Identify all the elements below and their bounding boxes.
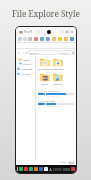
staticText: Documents [38, 68, 51, 71]
staticText: Pictures [51, 83, 64, 86]
button[interactable] [27, 36, 33, 48]
button[interactable]: App [39, 167, 43, 171]
staticText: Local Disk (C:) [21, 67, 35, 70]
button[interactable]: Videos [38, 73, 51, 86]
button[interactable] [33, 36, 39, 48]
button[interactable]: Documents [38, 58, 51, 71]
staticText: Local Disk (C:) [46, 89, 62, 92]
button[interactable] [63, 36, 69, 48]
button[interactable]: Back [17, 51, 21, 55]
button[interactable]: This PC [30, 50, 57, 55]
staticText: File Explore Style [12, 8, 80, 19]
button[interactable]: Notifications [71, 167, 75, 171]
button[interactable]: Local Disk (C:) [17, 66, 35, 70]
button[interactable]: Close [69, 29, 74, 35]
button[interactable]: App [29, 167, 33, 171]
staticText: This PC [23, 62, 32, 65]
staticText: Quick access [23, 58, 35, 61]
button[interactable] [57, 36, 63, 48]
staticText: This PC [30, 51, 39, 54]
staticText: Videos [38, 83, 51, 86]
button[interactable]: Local Disk (C:) [38, 89, 74, 97]
staticText: SD Card [46, 99, 55, 102]
button[interactable]: This PC [19, 30, 33, 34]
other: Network [49, 168, 52, 171]
staticText: Search [60, 51, 68, 54]
button[interactable]: Downloads [51, 58, 64, 71]
button[interactable]: List view [71, 161, 74, 164]
button[interactable]: SD Card [17, 71, 35, 75]
staticText: 6 items [59, 161, 67, 164]
button[interactable] [39, 36, 45, 48]
button[interactable]: Forward [21, 51, 25, 55]
staticText: SD Card [21, 72, 30, 75]
button[interactable]: App [34, 167, 38, 171]
button[interactable]: Search [60, 50, 74, 55]
button[interactable]: Pictures [51, 73, 64, 86]
button[interactable]: This PC [19, 61, 35, 65]
button[interactable] [45, 36, 51, 48]
button[interactable]: Minimize [59, 29, 64, 35]
button[interactable]: Up [25, 51, 29, 55]
button[interactable]: Details view [68, 161, 71, 164]
button[interactable]: Quick access [17, 57, 35, 61]
staticText: Downloads [51, 68, 64, 71]
button[interactable]: App [19, 167, 23, 171]
staticText: This PC [24, 30, 33, 34]
button[interactable] [22, 36, 27, 48]
button[interactable] [69, 36, 75, 48]
button[interactable]: App [24, 167, 28, 171]
button[interactable]: Maximize [64, 29, 69, 35]
button[interactable] [17, 36, 22, 48]
button[interactable]: SD Card [38, 99, 74, 107]
button[interactable]: App [44, 167, 48, 171]
button[interactable] [51, 36, 57, 48]
